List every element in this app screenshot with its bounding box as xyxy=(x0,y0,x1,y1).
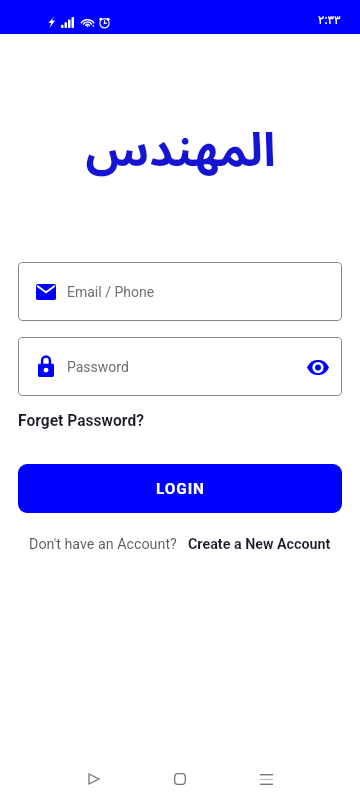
staticText: LOGIN xyxy=(156,480,205,498)
staticText: المهندس xyxy=(85,102,276,192)
staticText: Email / Phone xyxy=(67,284,155,300)
button[interactable]: Email / Phone xyxy=(18,262,342,321)
button[interactable]: Back xyxy=(74,759,114,799)
button[interactable]: Show password xyxy=(305,354,331,380)
button[interactable]: Recent apps xyxy=(246,759,286,799)
staticText: Don't have an Account? xyxy=(29,536,177,553)
button[interactable]: Forget Password? xyxy=(18,410,144,432)
staticText: Forget Password? xyxy=(18,412,144,430)
staticText: Password xyxy=(67,359,129,375)
button[interactable]: Create a New Account xyxy=(188,536,331,553)
button[interactable]: Password xyxy=(18,337,342,396)
staticText: ٢:٣٣ xyxy=(318,13,341,27)
button[interactable]: LOGIN xyxy=(18,464,342,513)
staticText: Create a New Account xyxy=(188,536,331,553)
button[interactable]: Home xyxy=(160,759,200,799)
